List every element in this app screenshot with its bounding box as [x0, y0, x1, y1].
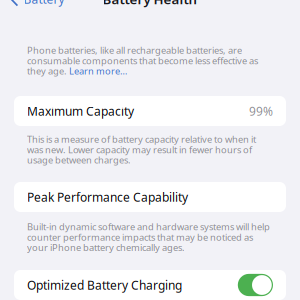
staticText: they age. [27, 65, 69, 77]
button[interactable]: Optimized Battery Charging [14, 270, 286, 300]
button[interactable]: Optimized Battery Charging [238, 274, 273, 296]
staticText: Optimized Battery Charging [27, 277, 182, 293]
staticText: Phone batteries, like all rechargeable b… [27, 44, 242, 56]
staticText: Battery Health [102, 0, 197, 8]
staticText: 99% [249, 103, 273, 119]
staticText: was new. Lower capacity may result in fe… [27, 143, 252, 156]
button[interactable]: Maximum Capacity [14, 96, 286, 126]
button[interactable]: Peak Performance Capability [14, 182, 286, 212]
staticText: This is a measure of battery capacity re… [27, 133, 256, 145]
staticText: consumable components that become less e… [27, 54, 258, 67]
button[interactable]: Battery Health [0, 0, 300, 12]
staticText: your iPhone battery chemically ages. [27, 241, 185, 254]
staticText: counter performance impacts that may be … [27, 231, 253, 243]
button[interactable]: Battery [0, 0, 90, 9]
button[interactable]: Learn more… [69, 65, 127, 77]
staticText: Battery [23, 0, 64, 7]
staticText: usage between charges. [27, 154, 131, 166]
staticText: Built-in dynamic software and hardware s… [27, 220, 270, 233]
staticText: Learn more… [69, 65, 127, 77]
staticText: Peak Performance Capability [27, 189, 188, 205]
staticText: Maximum Capacity [27, 103, 134, 119]
